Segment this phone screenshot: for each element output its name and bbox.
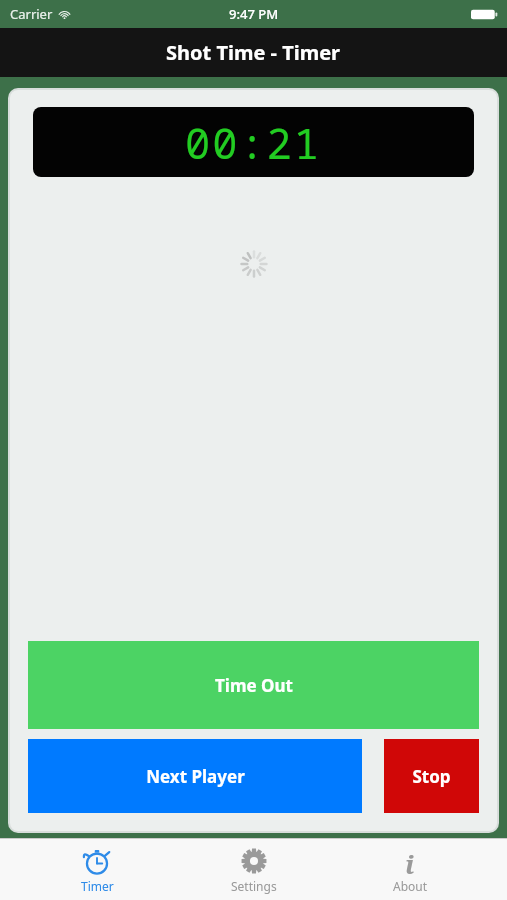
button[interactable]: Time Out: [28, 641, 479, 729]
button[interactable]: About: [350, 839, 470, 900]
staticText: Timer: [81, 878, 114, 894]
button[interactable]: Timer: [37, 839, 157, 900]
staticText: Shot Time - Timer: [166, 39, 341, 66]
staticText: Stop: [412, 765, 451, 788]
staticText: 9:47 PM: [229, 5, 279, 23]
staticText: Settings: [231, 878, 277, 894]
button[interactable]: Settings: [194, 839, 314, 900]
button[interactable]: Stop: [384, 739, 479, 813]
button[interactable]: Next Player: [28, 739, 362, 813]
staticText: About: [393, 878, 428, 894]
staticText: Next Player: [146, 765, 245, 788]
staticText: i: [405, 846, 415, 876]
staticText: Carrier: [10, 5, 53, 23]
staticText: Time Out: [215, 674, 293, 697]
staticText: 00:21: [185, 114, 322, 171]
